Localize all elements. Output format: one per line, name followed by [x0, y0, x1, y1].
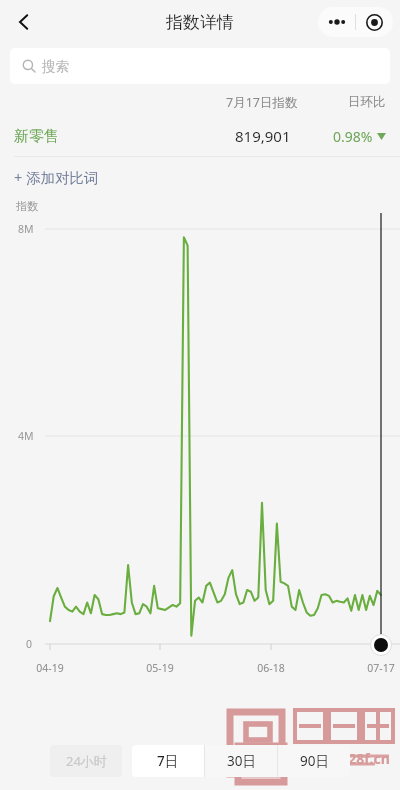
- staticText: + 添加对比词: [14, 167, 99, 187]
- staticText: www.328f.cn: [301, 749, 390, 768]
- button[interactable]: Back: [6, 4, 42, 40]
- button[interactable]: 7日: [132, 745, 204, 777]
- staticText: 0.98%: [333, 127, 373, 146]
- staticText: 搜索: [42, 58, 69, 75]
- staticText: 819,901: [235, 126, 291, 146]
- staticText: 04-19: [33, 661, 67, 675]
- staticText: 4M: [18, 429, 34, 443]
- staticText: 30日: [227, 752, 256, 770]
- button[interactable]: Close: [356, 14, 393, 31]
- staticText: 8M: [18, 222, 34, 236]
- button[interactable]: 24小时: [50, 745, 122, 777]
- staticText: 7月17日指数: [226, 94, 298, 111]
- staticText: 90日: [300, 752, 329, 770]
- staticText: 06-18: [254, 661, 288, 675]
- staticText: 0: [26, 637, 33, 651]
- staticText: 7日: [157, 752, 179, 770]
- staticText: 05-19: [143, 661, 177, 675]
- button[interactable]: 搜索: [10, 48, 390, 84]
- button[interactable]: + 添加对比词: [0, 157, 400, 197]
- button[interactable]: 30日: [205, 745, 277, 777]
- staticText: 07-17: [364, 661, 398, 675]
- button[interactable]: 新零售: [0, 116, 400, 156]
- staticText: 24小时: [66, 752, 107, 770]
- button[interactable]: More: [318, 18, 355, 26]
- staticText: 指数详情: [166, 12, 234, 33]
- staticText: 新零售: [14, 127, 59, 146]
- button[interactable]: 90日: [278, 745, 350, 777]
- staticText: 日环比: [348, 94, 386, 110]
- staticText: 指数: [16, 199, 38, 213]
